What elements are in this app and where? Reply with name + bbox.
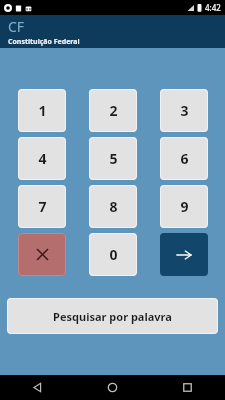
button[interactable]: 3 <box>160 89 208 132</box>
button[interactable]: Ir <box>160 233 208 276</box>
staticText: 0 <box>109 245 118 264</box>
button[interactable]: 9 <box>160 185 208 228</box>
button[interactable]: Limpar <box>18 233 66 276</box>
staticText: 6 <box>180 149 189 168</box>
button[interactable]: Pesquisar por palavra <box>7 298 218 334</box>
staticText: 1 <box>38 101 47 120</box>
staticText: Constituição Federal <box>8 37 80 47</box>
staticText: 4 <box>38 149 47 168</box>
button[interactable]: 6 <box>160 137 208 180</box>
button[interactable]: 2 <box>89 89 137 132</box>
button[interactable]: 0 <box>89 233 137 276</box>
button[interactable]: Recentes <box>150 375 225 400</box>
button[interactable]: 8 <box>89 185 137 228</box>
button[interactable]: 4 <box>18 137 66 180</box>
button[interactable]: 5 <box>89 137 137 180</box>
staticText: CF <box>8 17 25 36</box>
staticText: 3 <box>180 101 189 120</box>
button[interactable]: Voltar <box>0 375 75 400</box>
staticText: 4:42 <box>205 2 221 13</box>
button[interactable]: 7 <box>18 185 66 228</box>
staticText: 7 <box>38 197 47 216</box>
staticText: 8 <box>109 197 118 216</box>
staticText: 9 <box>180 197 189 216</box>
staticText: 5 <box>109 149 118 168</box>
staticText: Pesquisar por palavra <box>53 309 172 324</box>
staticText: 2 <box>109 101 118 120</box>
button[interactable]: Início <box>75 375 150 400</box>
button[interactable]: 1 <box>18 89 66 132</box>
